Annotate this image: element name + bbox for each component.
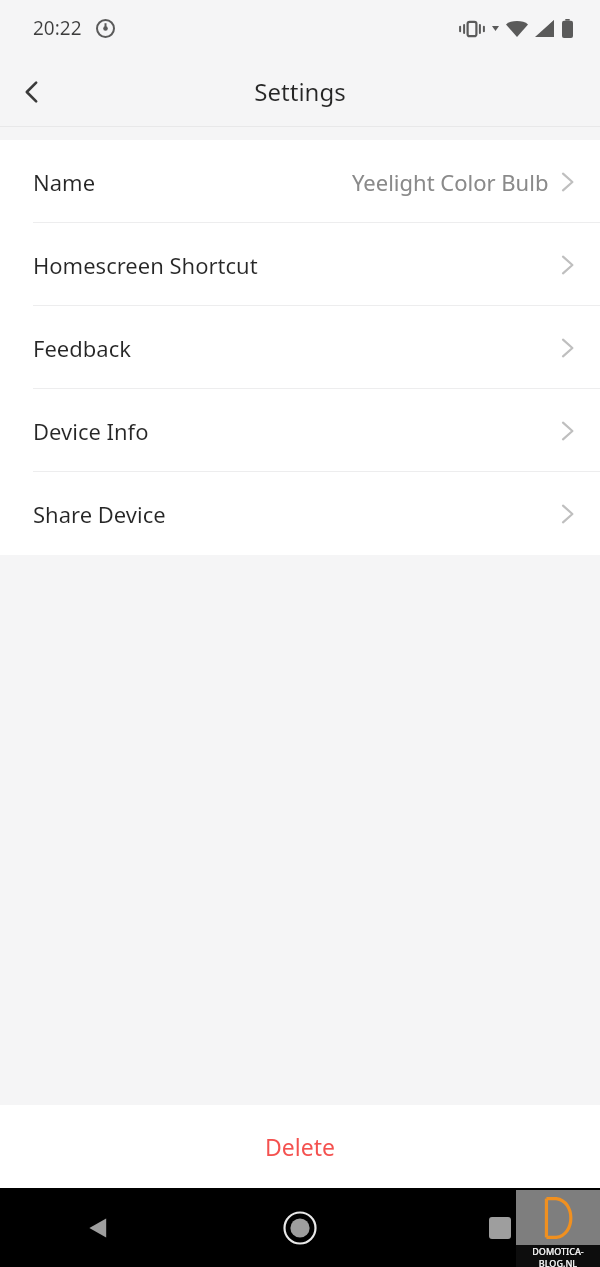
button[interactable]: Feedback bbox=[0, 306, 600, 389]
staticText: Feedback bbox=[33, 333, 131, 363]
staticText: Device Info bbox=[33, 416, 149, 446]
button[interactable]: Back bbox=[0, 60, 64, 124]
staticText: Settings bbox=[254, 75, 346, 108]
button[interactable]: Name bbox=[0, 140, 600, 223]
staticText: DOMOTICA-BLOG.NL bbox=[516, 1245, 600, 1267]
button[interactable]: Delete bbox=[0, 1105, 600, 1188]
staticText: Yeelight Color Bulb bbox=[352, 167, 549, 197]
button[interactable]: Home bbox=[200, 1188, 400, 1267]
staticText: 20:22 bbox=[33, 15, 82, 41]
staticText: Homescreen Shortcut bbox=[33, 250, 258, 280]
button[interactable]: Device Info bbox=[0, 389, 600, 472]
staticText: Delete bbox=[265, 1131, 335, 1162]
staticText: Name bbox=[33, 167, 96, 197]
button[interactable]: Recent apps bbox=[400, 1188, 600, 1267]
button[interactable]: Homescreen Shortcut bbox=[0, 223, 600, 306]
staticText: Share Device bbox=[33, 499, 166, 529]
button[interactable]: Back bbox=[0, 1188, 200, 1267]
button[interactable]: Share Device bbox=[0, 472, 600, 555]
